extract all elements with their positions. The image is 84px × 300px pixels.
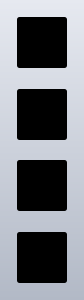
button[interactable]: Tile 4 <box>17 232 67 283</box>
button[interactable]: Tile 1 <box>17 17 67 68</box>
button[interactable]: Tile 2 <box>17 89 67 140</box>
button[interactable]: Tile 3 <box>17 160 67 211</box>
